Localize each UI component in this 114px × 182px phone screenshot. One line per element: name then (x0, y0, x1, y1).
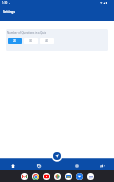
button[interactable]: 30 (24, 38, 38, 44)
button[interactable]: App (87, 173, 94, 180)
button[interactable]: App (65, 173, 72, 180)
staticText: 30 (29, 39, 33, 43)
button[interactable]: Home (0, 161, 26, 170)
button[interactable]: About (89, 161, 114, 170)
staticText: Settings (3, 10, 15, 14)
button[interactable]: App (76, 173, 83, 180)
button[interactable]: 20 (8, 38, 22, 44)
button[interactable]: App (54, 173, 61, 180)
button[interactable]: App (43, 173, 50, 180)
button[interactable]: Send (53, 152, 61, 160)
staticText: 1:30 (2, 1, 8, 5)
staticText: 20 (13, 39, 17, 43)
button[interactable]: Settings (64, 161, 89, 170)
button[interactable]: 40 (40, 38, 54, 44)
staticText: 40 (45, 39, 49, 43)
button[interactable]: History (26, 161, 51, 170)
staticText: Number of Questions in a Quiz (7, 31, 46, 35)
button[interactable]: App (32, 173, 39, 180)
button[interactable]: App (21, 173, 28, 180)
